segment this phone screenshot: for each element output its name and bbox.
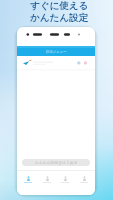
button[interactable]: Settings xyxy=(77,176,91,183)
button[interactable]: Search xyxy=(40,176,54,183)
button[interactable]: Favorites xyxy=(58,176,72,183)
button[interactable]: かんたん設定をはじめる xyxy=(22,159,90,166)
staticText: かんたん設定 xyxy=(30,12,88,24)
staticText: 設定メニュー xyxy=(46,50,67,54)
staticText: すぐに使える xyxy=(30,0,89,12)
button[interactable]: Home xyxy=(21,176,35,183)
staticText: かんたん設定をはじめる xyxy=(35,160,78,165)
